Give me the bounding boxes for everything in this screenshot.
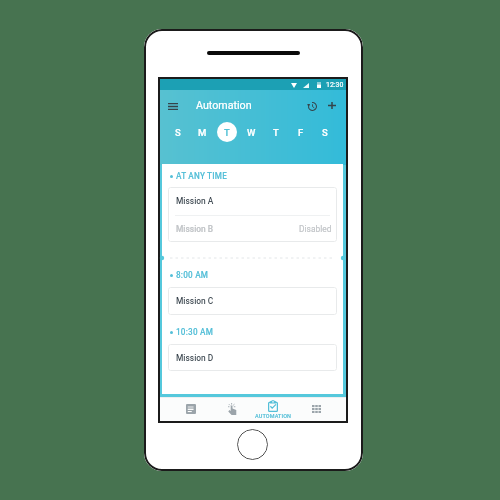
button[interactable]: W (241, 122, 261, 142)
staticText: T (224, 127, 230, 138)
button[interactable]: T (217, 122, 237, 142)
button[interactable]: 10:30 AM (170, 326, 214, 338)
staticText: Disabled (299, 224, 332, 234)
button[interactable]: Actions (214, 397, 250, 421)
button[interactable]: Mission C (168, 287, 337, 315)
button[interactable]: AUTOMATION (251, 397, 295, 421)
button[interactable]: 8:00 AM (170, 269, 209, 281)
button[interactable]: All apps (298, 397, 334, 421)
button[interactable]: Mission D (168, 344, 337, 371)
staticText: Mission B (176, 224, 214, 234)
staticText: F (298, 127, 304, 138)
button[interactable]: AT ANY TIME (170, 170, 227, 182)
staticText: 8:00 AM (176, 270, 209, 280)
button[interactable]: S (315, 122, 335, 142)
button[interactable]: Home (237, 429, 268, 460)
button[interactable]: T (266, 122, 286, 142)
staticText: W (247, 127, 256, 138)
button[interactable]: Add automation (324, 97, 340, 113)
button[interactable]: Mission A (168, 187, 337, 215)
staticText: M (198, 127, 207, 138)
staticText: 12:30 (326, 81, 344, 89)
staticText: 10:30 AM (176, 327, 214, 337)
button[interactable]: Navigation menu (164, 97, 182, 115)
button[interactable]: M (192, 122, 212, 142)
staticText: Mission C (176, 296, 214, 306)
staticText: Mission D (176, 353, 214, 363)
staticText: Automation (196, 99, 252, 112)
staticText: S (175, 127, 181, 138)
staticText: AT ANY TIME (176, 171, 227, 181)
button[interactable]: F (291, 122, 311, 142)
button[interactable]: Mission B (168, 216, 337, 242)
button[interactable]: Feed (173, 397, 209, 421)
button[interactable]: History (304, 98, 320, 114)
staticText: S (322, 127, 328, 138)
staticText: T (273, 127, 279, 138)
button[interactable]: S (168, 122, 188, 142)
staticText: Mission A (176, 196, 214, 206)
staticText: AUTOMATION (255, 413, 292, 419)
